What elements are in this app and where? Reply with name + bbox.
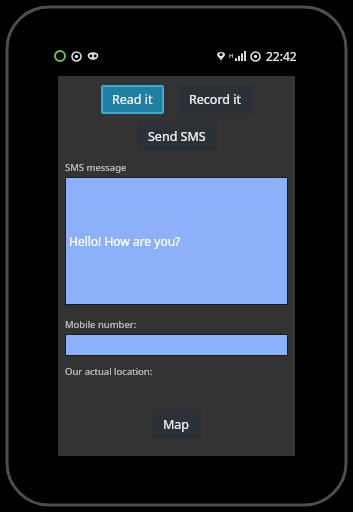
staticText: Map [163, 416, 190, 433]
button[interactable]: Hello! How are you? [66, 178, 287, 304]
staticText: Our actual location: [65, 365, 153, 378]
button[interactable]: Read it [101, 85, 164, 114]
staticText: 22:42 [266, 48, 297, 64]
staticText: Mobile number: [65, 318, 137, 331]
button[interactable]: Map [152, 410, 201, 439]
button[interactable]: Send SMS [137, 122, 217, 151]
other: Battery 99 [54, 50, 66, 62]
staticText: Send SMS [148, 128, 206, 145]
staticText: SMS message [65, 161, 127, 174]
staticText: Hello! How are you? [69, 233, 181, 249]
button[interactable]: Record it [178, 85, 252, 114]
staticText: Read it [112, 91, 153, 108]
staticText: Record it [189, 91, 241, 108]
staticText: H [229, 52, 234, 60]
